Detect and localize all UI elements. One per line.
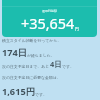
staticText: です。 bbox=[62, 64, 74, 69]
staticText: 積立スタイル診断を行ってから、 bbox=[2, 38, 62, 43]
button[interactable]: 運用利益額 bbox=[2, 0, 97, 37]
staticText: です。 bbox=[35, 92, 47, 97]
staticText: 1,615円 bbox=[2, 85, 35, 98]
staticText: 円 bbox=[75, 26, 79, 31]
staticText: 次の注文予定日に必要な金額は、 bbox=[2, 75, 61, 80]
staticText: 174日 bbox=[2, 46, 27, 59]
staticText: 4日 bbox=[50, 59, 62, 69]
staticText: 運用利益額 bbox=[42, 9, 57, 13]
staticText: が経ちました。 bbox=[27, 53, 55, 58]
staticText: +35,654 bbox=[21, 14, 75, 34]
staticText: 次の注文予定日まで、あと bbox=[2, 64, 50, 69]
